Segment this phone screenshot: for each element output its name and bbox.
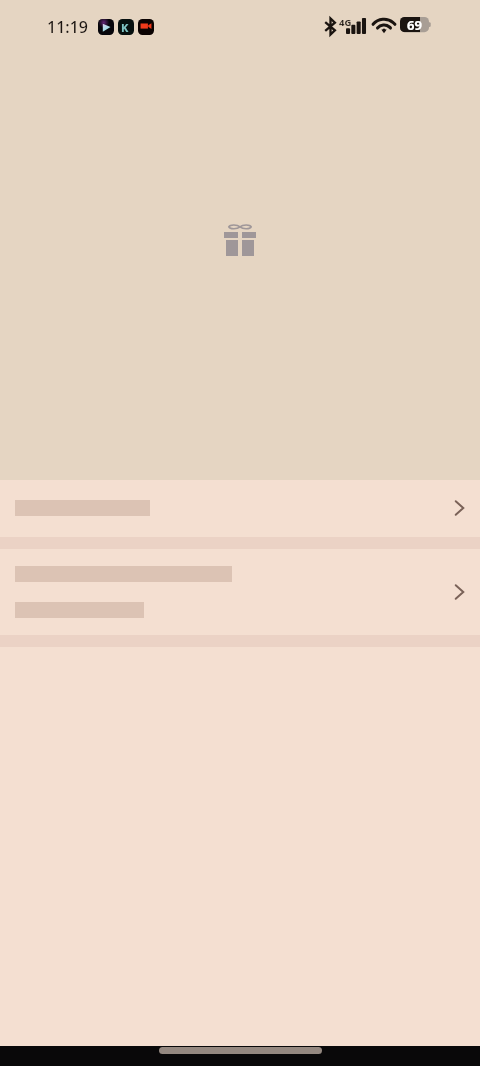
staticText: 4G — [339, 16, 352, 29]
button[interactable]: List item 1, loading — [0, 480, 480, 537]
staticText: K — [121, 20, 129, 35]
button[interactable]: List item 2, loading — [0, 549, 480, 635]
staticText: 69 — [407, 16, 422, 32]
staticText: 11:19 — [47, 16, 88, 38]
